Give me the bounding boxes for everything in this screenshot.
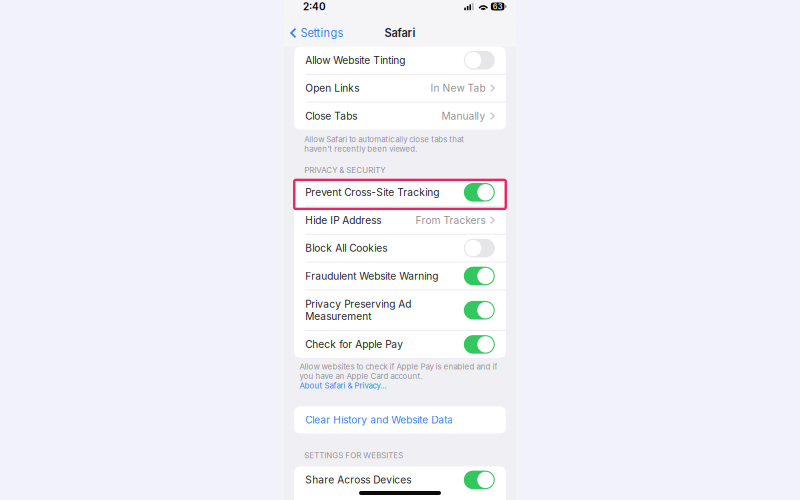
staticText: Close Tabs: [305, 110, 357, 122]
staticText: Block All Cookies: [305, 242, 387, 254]
staticText: Hide IP Address: [305, 214, 381, 226]
staticText: Manually: [441, 110, 485, 122]
staticText: Privacy Preserving Ad Measurement: [305, 298, 411, 322]
button[interactable]: About Safari & Privacy...: [294, 381, 506, 391]
button[interactable]: Share Across Devices: [294, 466, 506, 493]
staticText: Allow Safari to automatically close tabs…: [304, 135, 464, 154]
button[interactable]: Close Tabs: [294, 102, 506, 130]
staticText: Safari: [384, 26, 415, 40]
button[interactable]: Settings: [284, 23, 343, 43]
button[interactable]: Open Links: [294, 74, 506, 102]
button[interactable]: Hide IP Address: [294, 207, 506, 234]
staticText: About Safari & Privacy...: [299, 381, 386, 390]
button[interactable]: Fraudulent Website Warning: [294, 262, 506, 290]
staticText: PRIVACY & SECURITY: [304, 165, 385, 175]
staticText: Allow websites to check if Apple Pay is …: [299, 362, 497, 381]
staticText: 63: [493, 2, 503, 11]
staticText: In New Tab: [430, 82, 485, 94]
staticText: Fraudulent Website Warning: [305, 270, 438, 282]
button[interactable]: Privacy Preserving Ad Measurement: [294, 290, 506, 330]
staticText: Clear History and Website Data: [305, 414, 453, 426]
staticText: Settings: [300, 26, 343, 40]
staticText: Allow Website Tinting: [305, 54, 405, 66]
button[interactable]: Clear History and Website Data: [294, 406, 506, 433]
staticText: SETTINGS FOR WEBSITES: [304, 451, 403, 460]
button[interactable]: Block All Cookies: [294, 234, 506, 262]
staticText: 2:40: [303, 0, 326, 13]
staticText: Check for Apple Pay: [305, 338, 403, 351]
staticText: Prevent Cross-Site Tracking: [305, 186, 439, 198]
staticText: Open Links: [305, 82, 359, 94]
staticText: Share Across Devices: [305, 474, 411, 486]
staticText: From Trackers: [415, 214, 485, 226]
button[interactable]: Allow Website Tinting: [294, 47, 506, 74]
button[interactable]: Prevent Cross-Site Tracking: [294, 179, 506, 206]
button[interactable]: Check for Apple Pay: [294, 331, 506, 358]
